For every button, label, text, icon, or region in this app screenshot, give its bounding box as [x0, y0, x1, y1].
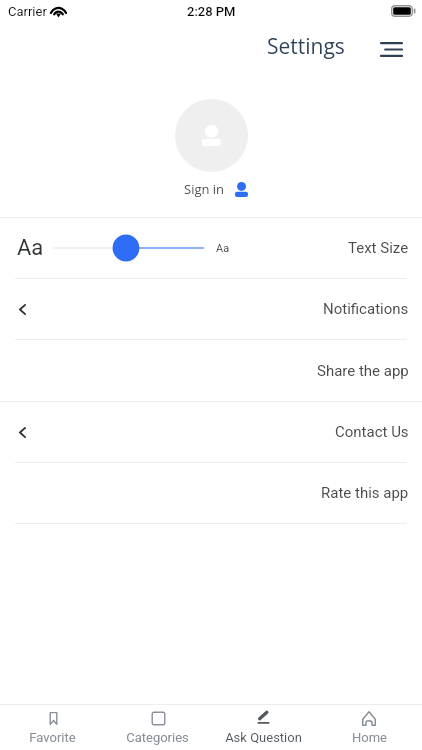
button[interactable]: Sign in	[180, 178, 252, 200]
button[interactable]: Profile photo	[175, 99, 248, 172]
button[interactable]: Menu	[374, 29, 408, 63]
staticText: 2:28 PM	[187, 4, 236, 19]
staticText: Categories	[126, 730, 189, 745]
staticText: Aa	[216, 242, 230, 255]
staticText: Sign in	[184, 180, 225, 198]
button[interactable]: Share the app	[0, 340, 422, 401]
staticText: Notifications	[323, 300, 409, 318]
button[interactable]: Home	[316, 705, 422, 750]
button[interactable]: Favorite	[0, 705, 105, 750]
button[interactable]: Notifications	[0, 279, 422, 339]
staticText: Text Size	[348, 239, 409, 257]
staticText: Carrier	[8, 4, 47, 19]
staticText: Aa	[17, 235, 44, 261]
button[interactable]: Aa	[0, 218, 422, 278]
button[interactable]: Contact Us	[0, 402, 422, 462]
staticText: Home	[352, 730, 387, 745]
button[interactable]: Rate this app	[0, 463, 422, 523]
staticText: Share the app	[317, 362, 409, 380]
staticText: Ask Question	[225, 730, 302, 745]
staticText: Settings	[267, 32, 345, 61]
staticText: Favorite	[29, 730, 76, 745]
staticText: Rate this app	[321, 484, 409, 502]
button[interactable]: Categories	[105, 705, 210, 750]
staticText: Contact Us	[335, 423, 409, 441]
button[interactable]: Ask Question	[210, 705, 316, 750]
